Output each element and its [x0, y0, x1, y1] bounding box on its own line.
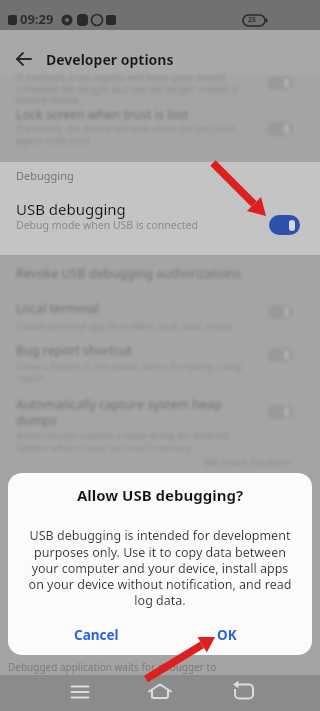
- staticText: USB debugging: [16, 199, 126, 219]
- staticText: Allow USB debugging?: [8, 485, 312, 505]
- button[interactable]: [267, 76, 293, 90]
- staticText: 25: [248, 15, 257, 25]
- staticText: Debugging: [16, 168, 74, 183]
- button[interactable]: [267, 305, 293, 319]
- button[interactable]: [226, 675, 262, 711]
- button[interactable]: [0, 104, 320, 146]
- button[interactable]: [62, 675, 98, 711]
- button[interactable]: Cancel: [58, 620, 134, 650]
- staticText: Local terminal: [16, 300, 100, 317]
- staticText: USB debugging is intended for developmen…: [8, 527, 312, 608]
- button[interactable]: [267, 122, 293, 136]
- staticText: Debug mode when USB is connected: [16, 218, 198, 232]
- button[interactable]: [142, 675, 178, 711]
- staticText: Debugged application waits for debugger …: [8, 660, 217, 674]
- staticText: Lock screen when trust is lost: [16, 106, 189, 123]
- staticText: Revoke USB debugging authorizations: [16, 265, 242, 282]
- staticText: dumps: [16, 412, 57, 429]
- button[interactable]: [269, 215, 300, 235]
- staticText: Automatically capture system heap: [16, 396, 222, 413]
- staticText: 09:29: [20, 10, 54, 28]
- staticText: Developer options: [46, 50, 174, 69]
- button[interactable]: [267, 348, 293, 362]
- button[interactable]: [16, 52, 32, 68]
- staticText: If enabled, trust agents will keep your …: [16, 70, 226, 84]
- button[interactable]: OK: [199, 620, 255, 650]
- staticText: Bug report shortcut: [16, 342, 133, 359]
- button[interactable]: USB debugging: [0, 196, 320, 248]
- staticText: OK: [217, 626, 237, 644]
- staticText: Cancel: [74, 626, 119, 644]
- button[interactable]: [267, 405, 293, 419]
